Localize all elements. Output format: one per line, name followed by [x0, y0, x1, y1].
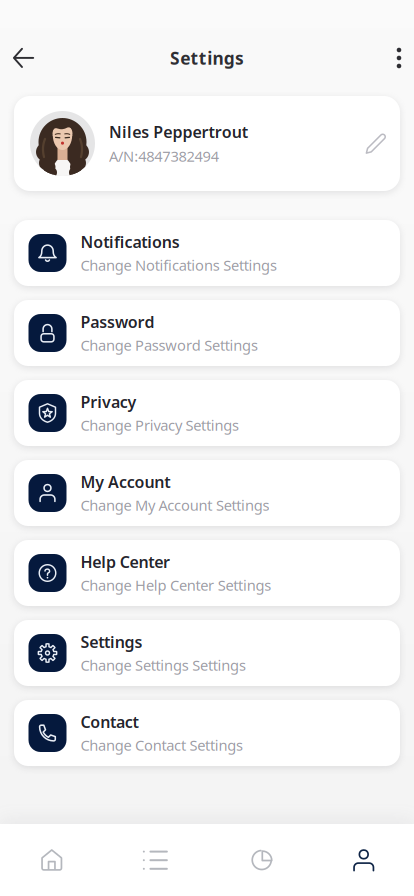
- button[interactable]: Back: [1, 36, 46, 80]
- button[interactable]: Statistics: [207, 824, 310, 896]
- button[interactable]: Contact: [14, 700, 400, 766]
- staticText: Change Help Center Settings: [80, 575, 271, 595]
- staticText: Privacy: [80, 391, 137, 412]
- button[interactable]: Profile: [310, 824, 414, 896]
- staticText: Password: [80, 311, 154, 332]
- staticText: Help Center: [80, 551, 170, 572]
- button[interactable]: Activity: [103, 824, 207, 896]
- staticText: Settings: [80, 631, 142, 652]
- staticText: Change Notifications Settings: [80, 255, 277, 275]
- staticText: Change Contact Settings: [80, 735, 243, 755]
- staticText: Notifications: [80, 231, 180, 252]
- button[interactable]: My Account: [14, 460, 400, 526]
- staticText: My Account: [80, 471, 170, 492]
- button[interactable]: More options: [376, 35, 414, 80]
- staticText: Contact: [80, 711, 139, 732]
- staticText: Change Settings Settings: [80, 655, 246, 675]
- staticText: Settings: [170, 46, 244, 69]
- button[interactable]: Niles Peppertrout: [14, 96, 400, 191]
- staticText: Change My Account Settings: [80, 495, 269, 515]
- button[interactable]: Settings: [14, 620, 400, 686]
- button[interactable]: Home: [0, 824, 103, 896]
- button[interactable]: Privacy: [14, 380, 400, 446]
- button[interactable]: Help Center: [14, 540, 400, 606]
- staticText: Niles Peppertrout: [109, 121, 248, 142]
- staticText: A/N:4847382494: [109, 146, 219, 166]
- staticText: Change Privacy Settings: [80, 415, 239, 435]
- button[interactable]: Password: [14, 300, 400, 366]
- staticText: Change Password Settings: [80, 335, 258, 355]
- button[interactable]: Notifications: [14, 220, 400, 286]
